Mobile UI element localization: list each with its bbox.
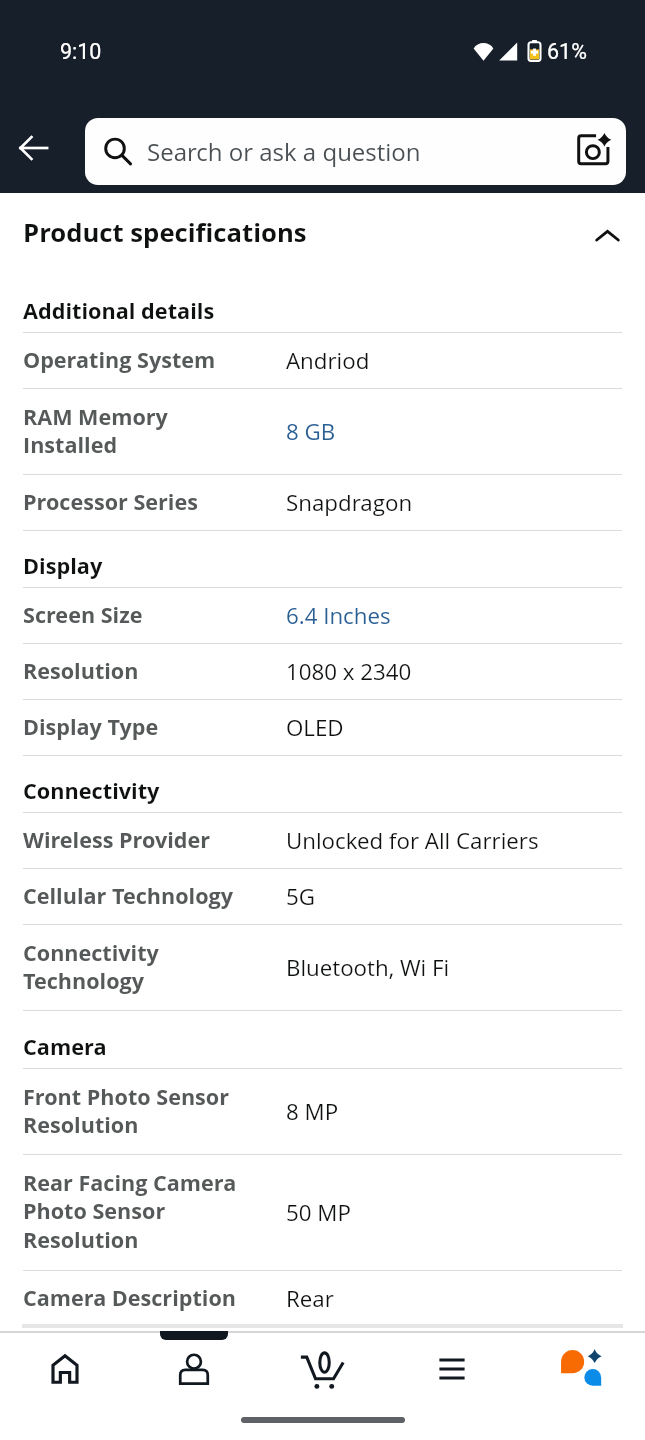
staticText: Andriod — [286, 345, 370, 375]
staticText: 50 MP — [286, 1197, 351, 1227]
staticText: Additional details — [23, 296, 215, 326]
staticText: Rear — [286, 1283, 334, 1313]
staticText: Screen Size — [23, 600, 265, 629]
staticText: Search or ask a question — [147, 135, 421, 168]
staticText: 6.4 Inches — [286, 600, 391, 630]
staticText: Front Photo Sensor Resolution — [23, 1082, 265, 1140]
staticText: Wireless Provider — [23, 825, 265, 854]
staticText: Processor Series — [23, 487, 265, 516]
staticText: 5G — [286, 881, 315, 911]
button[interactable]: Rufus assistant — [516, 1336, 645, 1402]
staticText: Connectivity Technology — [23, 938, 265, 996]
button[interactable]: Search or ask a question — [85, 118, 626, 185]
staticText: RAM Memory Installed — [23, 402, 265, 460]
staticText: Operating System — [23, 345, 265, 374]
button[interactable]: Back — [7, 122, 59, 174]
staticText: Unlocked for All Carriers — [286, 825, 539, 855]
staticText: Cellular Technology — [23, 881, 265, 910]
staticText: Camera Description — [23, 1283, 265, 1312]
staticText: Snapdragon — [286, 487, 413, 517]
button[interactable]: Menu — [387, 1336, 516, 1402]
staticText: 8 GB — [286, 416, 336, 446]
staticText: Bluetooth, Wi Fi — [286, 952, 450, 982]
staticText: Camera — [23, 1032, 107, 1062]
button[interactable]: Your account — [129, 1336, 258, 1402]
staticText: OLED — [286, 712, 344, 742]
button[interactable]: Cart, 0 items — [258, 1336, 387, 1402]
staticText: Resolution — [23, 656, 265, 685]
staticText: 9:10 — [60, 39, 102, 64]
staticText: Rear Facing Camera Photo Sensor Resoluti… — [23, 1168, 265, 1255]
staticText: 8 MP — [286, 1096, 339, 1126]
staticText: Display Type — [23, 712, 265, 741]
staticText: 61% — [547, 39, 587, 64]
button[interactable]: Home — [0, 1336, 129, 1402]
button[interactable]: Product specifications — [0, 193, 645, 275]
staticText: Product specifications — [23, 215, 307, 250]
staticText: Display — [23, 551, 103, 581]
staticText: 1080 x 2340 — [286, 656, 412, 686]
staticText: Connectivity — [23, 776, 160, 806]
